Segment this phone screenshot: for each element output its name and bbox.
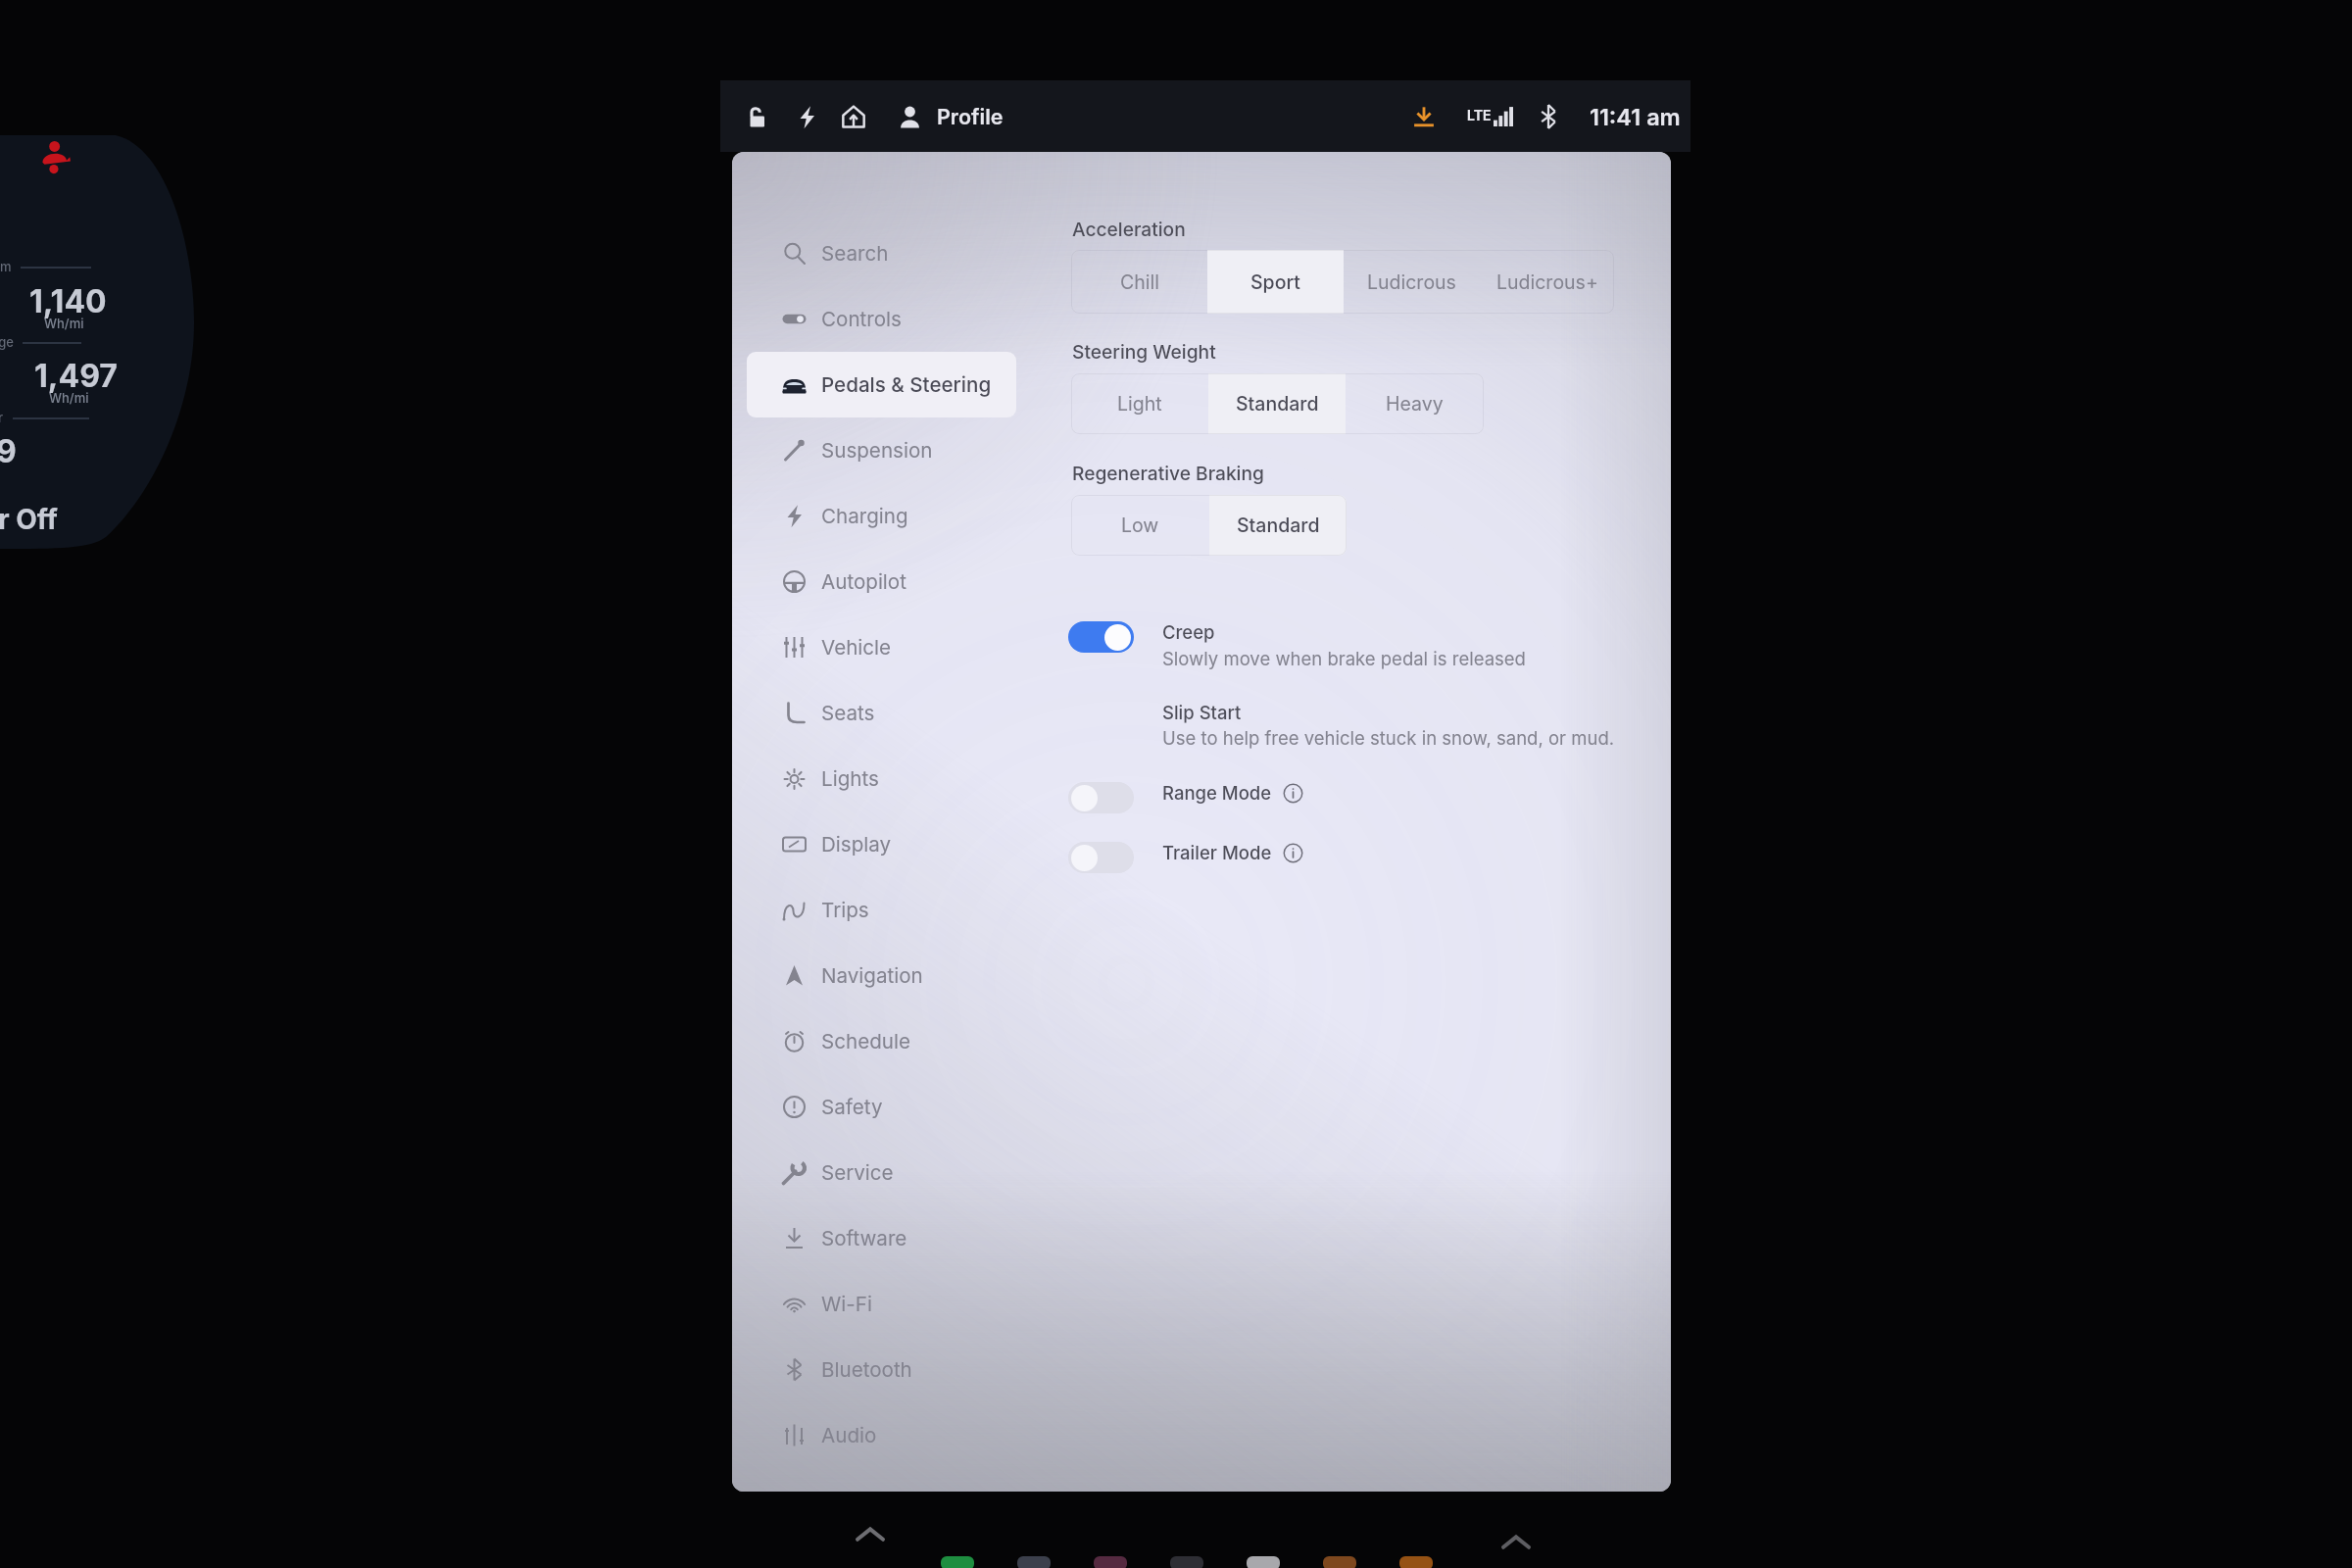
button[interactable]: Creep: [1162, 621, 1215, 643]
button[interactable]: On: [1068, 621, 1134, 653]
staticText: LTE: [1467, 107, 1492, 123]
staticText: Seats: [821, 701, 875, 725]
staticText: ar Off: [0, 503, 58, 536]
staticText: Trailer Mode: [1162, 842, 1272, 863]
button[interactable]: Bluetooth: [747, 1337, 1016, 1402]
staticText: Acceleration: [1072, 218, 1186, 240]
staticText: Low: [1121, 514, 1159, 537]
button[interactable]: Heavy: [1346, 373, 1483, 434]
staticText: Slowly move when brake pedal is released: [1162, 648, 1526, 669]
staticText: Service: [821, 1160, 894, 1185]
staticText: 1,497: [34, 357, 118, 395]
staticText: Software: [821, 1226, 907, 1250]
button[interactable]: Wi-Fi: [747, 1271, 1016, 1337]
staticText: Standard: [1236, 392, 1319, 416]
button[interactable]: Audio: [747, 1402, 1016, 1468]
button[interactable]: Profile: [893, 96, 1009, 137]
staticText: m: [0, 259, 12, 274]
staticText: Controls: [821, 307, 902, 331]
staticText: Schedule: [821, 1029, 910, 1053]
button[interactable]: Suspension: [747, 417, 1016, 483]
staticText: Regenerative Braking: [1072, 462, 1264, 484]
button[interactable]: Trips: [747, 877, 1016, 943]
button[interactable]: Range Mode: [1162, 782, 1303, 804]
button[interactable]: Safety: [747, 1074, 1016, 1140]
staticText: Slip Start: [1162, 702, 1242, 723]
staticText: Lights: [821, 766, 879, 791]
staticText: 1,140: [29, 282, 107, 320]
button[interactable]: Ludicrous: [1344, 250, 1480, 314]
button[interactable]: Vehicle: [747, 614, 1016, 680]
button[interactable]: 11:41 am: [1588, 97, 1683, 136]
staticText: Audio: [821, 1423, 877, 1447]
button[interactable]: Pedals & Steering: [747, 352, 1016, 417]
button[interactable]: Off: [1068, 782, 1134, 813]
button[interactable]: Standard: [1209, 495, 1347, 556]
button[interactable]: Chill: [1071, 250, 1207, 314]
staticText: Chill: [1120, 270, 1159, 294]
button[interactable]: Schedule: [747, 1008, 1016, 1074]
button[interactable]: Light: [1071, 373, 1208, 434]
staticText: Autopilot: [821, 569, 906, 594]
staticText: arge: [0, 334, 14, 350]
staticText: Profile: [937, 104, 1004, 129]
button[interactable]: Bluetooth: [1533, 101, 1564, 132]
staticText: Safety: [821, 1095, 883, 1119]
button[interactable]: Charging: [783, 93, 830, 140]
button[interactable]: Navigation: [747, 943, 1016, 1008]
staticText: Ludicrous: [1367, 270, 1456, 294]
button[interactable]: Lock: [730, 90, 783, 143]
button[interactable]: Standard: [1208, 373, 1346, 434]
button[interactable]: Low: [1071, 495, 1209, 556]
staticText: Display: [821, 832, 892, 857]
staticText: Sport: [1250, 270, 1300, 294]
staticText: Charging: [821, 504, 908, 528]
staticText: Wh/mi: [44, 316, 84, 331]
button[interactable]: Display: [747, 811, 1016, 877]
staticText: Suspension: [821, 438, 933, 463]
staticText: Trips: [821, 898, 869, 922]
staticText: Light: [1117, 392, 1162, 416]
button[interactable]: Trailer Mode: [1162, 842, 1303, 863]
button[interactable]: Seats: [747, 680, 1016, 746]
staticText: Navigation: [821, 963, 923, 988]
staticText: Standard: [1237, 514, 1320, 537]
button[interactable]: Autopilot: [747, 549, 1016, 614]
staticText: Range Mode: [1162, 782, 1272, 804]
staticText: 11:41 am: [1590, 103, 1681, 130]
button[interactable]: Software: [747, 1205, 1016, 1271]
button[interactable]: Search: [747, 220, 1016, 286]
staticText: Heavy: [1386, 392, 1444, 416]
staticText: Pedals & Steering: [821, 372, 992, 397]
staticText: Vehicle: [821, 635, 892, 660]
staticText: 9: [0, 432, 17, 470]
staticText: r: [0, 410, 4, 425]
staticText: Bluetooth: [821, 1357, 912, 1382]
button[interactable]: Lights: [747, 746, 1016, 811]
staticText: Creep: [1162, 621, 1215, 643]
staticText: Steering Weight: [1072, 340, 1216, 363]
staticText: Wh/mi: [49, 390, 89, 406]
button[interactable]: Ludicrous+: [1480, 250, 1614, 314]
button[interactable]: Charging: [747, 483, 1016, 549]
staticText: Use to help free vehicle stuck in snow, …: [1162, 727, 1615, 749]
button[interactable]: Off: [1068, 842, 1134, 873]
staticText: Ludicrous+: [1496, 270, 1598, 294]
staticText: Wi-Fi: [821, 1292, 872, 1316]
button[interactable]: Service: [747, 1140, 1016, 1205]
button[interactable]: Sport: [1207, 250, 1344, 314]
button[interactable]: Software update: [1405, 98, 1443, 135]
button[interactable]: Slip Start: [1162, 702, 1242, 723]
staticText: Search: [821, 241, 889, 266]
button[interactable]: Home: [830, 93, 877, 140]
button[interactable]: Controls: [747, 286, 1016, 352]
